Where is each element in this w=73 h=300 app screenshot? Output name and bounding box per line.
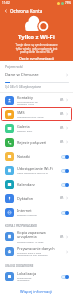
- staticText: Wł.: [60, 112, 64, 116]
- staticText: Hasła zapisanych sieci Wi-Fi: [17, 171, 48, 174]
- button[interactable]: Przełącznik: [61, 154, 69, 159]
- button[interactable]: Dane w Chmurze: [5, 72, 69, 78]
- staticText: Kopia zapasowa urządzenia: [17, 230, 46, 240]
- staticText: SMS: [17, 110, 25, 115]
- staticText: USŁUGI DODATKOWE: [5, 264, 34, 268]
- staticText: Znajdowanie urządzenia: [17, 276, 32, 282]
- button[interactable]: Opcje synchronizacji: [15, 55, 59, 61]
- staticText: Opcje synchronizacji: [19, 56, 55, 60]
- staticText: Wł.: [60, 126, 64, 130]
- staticText: KOPIA I PRZYWRACANIE: [5, 224, 38, 228]
- staticText: Dane w Chmurze: [5, 72, 39, 78]
- staticText: Dyktafon: [17, 196, 34, 201]
- staticText: Kalendarz: [17, 182, 35, 187]
- staticText: Wiadomości SMS i MMS: [17, 115, 44, 118]
- staticText: Wł.: [60, 235, 64, 239]
- staticText: Synchronizacja: wł. Ostatnio: 12:04: [17, 100, 39, 106]
- staticText: Wł.: [60, 140, 64, 144]
- button[interactable]: SMS: [1, 107, 72, 121]
- staticText: Przywróć dane z kopii zapasowej na tym t…: [17, 251, 48, 257]
- button[interactable]: Przełącznik: [61, 274, 69, 279]
- staticText: Więcej informacji: [20, 289, 53, 294]
- staticText: 75%: [65, 1, 71, 5]
- staticText: Rejestr połączeń: [17, 140, 47, 145]
- staticText: Lokalizacja: [17, 271, 37, 276]
- staticText: Kontakty: [17, 95, 33, 100]
- staticText: Notatki: [17, 154, 31, 159]
- staticText: Zdjęcia i filmy: [17, 129, 33, 132]
- staticText: Galeria: [17, 124, 30, 129]
- button[interactable]: Lokalizacja: [1, 269, 72, 284]
- staticText: Twoje dane są synchronizowane tylko wted…: [15, 43, 58, 53]
- button[interactable]: Galeria: [1, 121, 72, 135]
- button[interactable]: Przełącznik: [61, 210, 69, 215]
- staticText: Ochrona Konta: [10, 8, 43, 14]
- button[interactable]: Przełącznik: [61, 182, 69, 187]
- staticText: Internet: [17, 208, 32, 213]
- button[interactable]: Więcej informacji: [18, 287, 55, 296]
- staticText: Pojemność: [5, 64, 24, 69]
- button[interactable]: Kalendarz: [1, 177, 72, 191]
- staticText: Tylko z Wi-Fi: [18, 33, 55, 41]
- staticText: Przywracanie danych: [17, 246, 55, 251]
- button[interactable]: Kontakty: [1, 93, 72, 107]
- button[interactable]: Przełącznik: [61, 168, 69, 173]
- button[interactable]: Przywracanie danych: [1, 244, 72, 259]
- button[interactable]: Internet: [1, 205, 72, 219]
- staticText: Wł.: [60, 196, 64, 200]
- staticText: Udostępnianie Wi-Fi: [17, 166, 53, 171]
- button[interactable]: Dyktafon: [1, 191, 72, 205]
- button[interactable]: Kopia zapasowa urządzenia: [1, 229, 72, 244]
- staticText: 11:02: [2, 1, 10, 5]
- button[interactable]: Notatki: [1, 149, 72, 163]
- button[interactable]: Rejestr połączeń: [1, 135, 72, 149]
- button[interactable]: Udostępnianie Wi-Fi: [1, 163, 72, 177]
- staticText: 0,4 GB z 5 GB wykorzystane: [5, 85, 42, 89]
- staticText: Zakładki i historia: [17, 213, 37, 216]
- staticText: Ostatnia kopia: 12 maja: [17, 240, 44, 243]
- button[interactable]: Wstecz: [2, 7, 9, 14]
- staticText: Wł.: [60, 98, 64, 102]
